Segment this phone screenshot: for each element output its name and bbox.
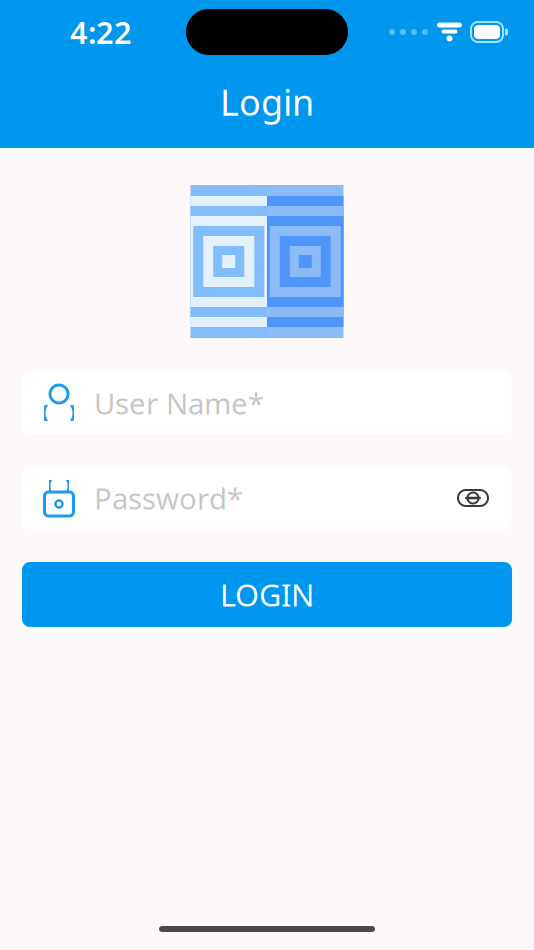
staticText: User Name* (94, 383, 264, 422)
staticText: LOGIN (220, 574, 314, 615)
button[interactable]: Password* (22, 467, 512, 529)
staticText: 4:22 (70, 12, 132, 52)
button[interactable]: LOGIN (22, 562, 512, 627)
button[interactable]: User Name* (22, 372, 512, 434)
staticText: Password* (94, 478, 243, 517)
staticText: Login (220, 78, 314, 126)
